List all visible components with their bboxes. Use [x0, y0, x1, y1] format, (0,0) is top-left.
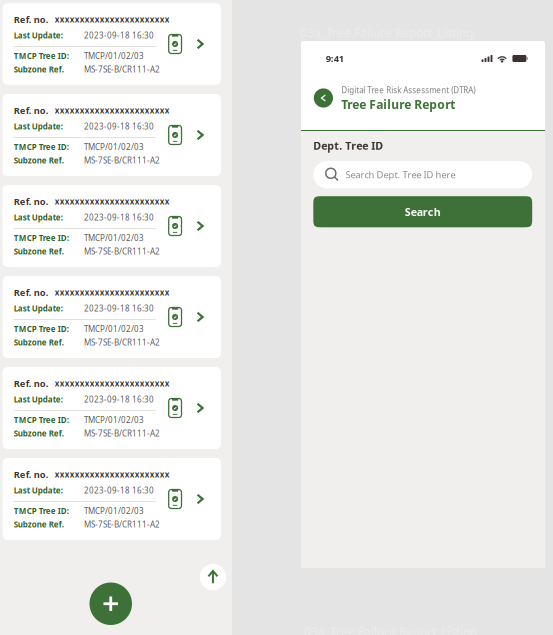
- staticText: Ref. no.: [14, 286, 49, 299]
- staticText: TMCP/01/02/03: [84, 415, 144, 425]
- button[interactable]: Ref. no.: [2, 367, 221, 449]
- staticText: MS-7SE-B/CR111-A2: [84, 64, 160, 75]
- staticText: Ref. no.: [14, 104, 49, 117]
- staticText: Search: [405, 205, 441, 219]
- staticText: 9:41: [326, 52, 344, 65]
- staticText: Last Update:: [14, 30, 63, 41]
- button[interactable]: Add report: [89, 582, 132, 625]
- staticText: Subzone Ref.: [14, 64, 64, 75]
- staticText: 2023-09-18 16:30: [84, 485, 154, 496]
- button[interactable]: Ref. no.: [2, 276, 221, 358]
- staticText: TMCP Tree ID:: [14, 506, 69, 516]
- button[interactable]: Scroll to top: [200, 564, 226, 590]
- staticText: MS-7SE-B/CR111-A2: [84, 337, 160, 348]
- button[interactable]: Ref. no.: [2, 94, 221, 176]
- staticText: TMCP/01/02/03: [84, 51, 144, 61]
- staticText: xxxxxxxxxxxxxxxxxxxxxxx: [55, 287, 170, 298]
- staticText: Subzone Ref.: [14, 337, 64, 348]
- staticText: Last Update:: [14, 394, 63, 405]
- staticText: MS-7SE-B/CR111-A2: [84, 519, 160, 530]
- staticText: Last Update:: [14, 303, 63, 314]
- staticText: Subzone Ref.: [14, 155, 64, 166]
- staticText: TMCP/01/02/03: [84, 142, 144, 152]
- staticText: TMCP Tree ID:: [14, 415, 69, 425]
- staticText: Ref. no.: [14, 468, 49, 481]
- staticText: TMCP Tree ID:: [14, 233, 69, 243]
- staticText: Search Dept. Tree ID here: [346, 168, 456, 181]
- staticText: TMCP/01/02/03: [84, 233, 144, 243]
- button[interactable]: Ref. no.: [2, 458, 221, 540]
- staticText: Last Update:: [14, 485, 63, 496]
- staticText: xxxxxxxxxxxxxxxxxxxxxxx: [55, 469, 170, 480]
- button[interactable]: Back: [314, 88, 333, 108]
- staticText: MS-7SE-B/CR111-A2: [84, 428, 160, 439]
- staticText: 2023-09-18 16:30: [84, 394, 154, 405]
- button[interactable]: Ref. no.: [2, 3, 221, 85]
- staticText: TMCP/01/02/03: [84, 506, 144, 516]
- staticText: 2023-09-18 16:30: [84, 30, 154, 41]
- staticText: Subzone Ref.: [14, 428, 64, 439]
- staticText: Tree Failure Report: [341, 96, 455, 112]
- staticText: MS-7SE-B/CR111-A2: [84, 246, 160, 257]
- button[interactable]: Ref. no.: [2, 185, 221, 267]
- staticText: Dept. Tree ID: [313, 138, 383, 153]
- staticText: Ref. no.: [14, 13, 49, 26]
- staticText: xxxxxxxxxxxxxxxxxxxxxxx: [55, 105, 170, 116]
- staticText: Ref. no.: [14, 377, 49, 390]
- staticText: xxxxxxxxxxxxxxxxxxxxxxx: [55, 14, 170, 25]
- staticText: TMCP Tree ID:: [14, 142, 69, 152]
- staticText: MS-7SE-B/CR111-A2: [84, 155, 160, 166]
- button[interactable]: Search: [313, 196, 532, 227]
- staticText: TMCP/01/02/03: [84, 324, 144, 334]
- staticText: TMCP Tree ID:: [14, 324, 69, 334]
- staticText: Subzone Ref.: [14, 519, 64, 530]
- staticText: Digital Tree Risk Assessment (DTRA): [341, 85, 475, 95]
- staticText: xxxxxxxxxxxxxxxxxxxxxxx: [55, 196, 170, 207]
- staticText: TMCP Tree ID:: [14, 51, 69, 61]
- staticText: Ref. no.: [14, 195, 49, 208]
- staticText: 2023-09-18 16:30: [84, 303, 154, 314]
- staticText: 2023-09-18 16:30: [84, 212, 154, 223]
- staticText: Subzone Ref.: [14, 246, 64, 257]
- staticText: Last Update:: [14, 121, 63, 132]
- staticText: Last Update:: [14, 212, 63, 223]
- staticText: 2023-09-18 16:30: [84, 121, 154, 132]
- staticText: xxxxxxxxxxxxxxxxxxxxxxx: [55, 378, 170, 389]
